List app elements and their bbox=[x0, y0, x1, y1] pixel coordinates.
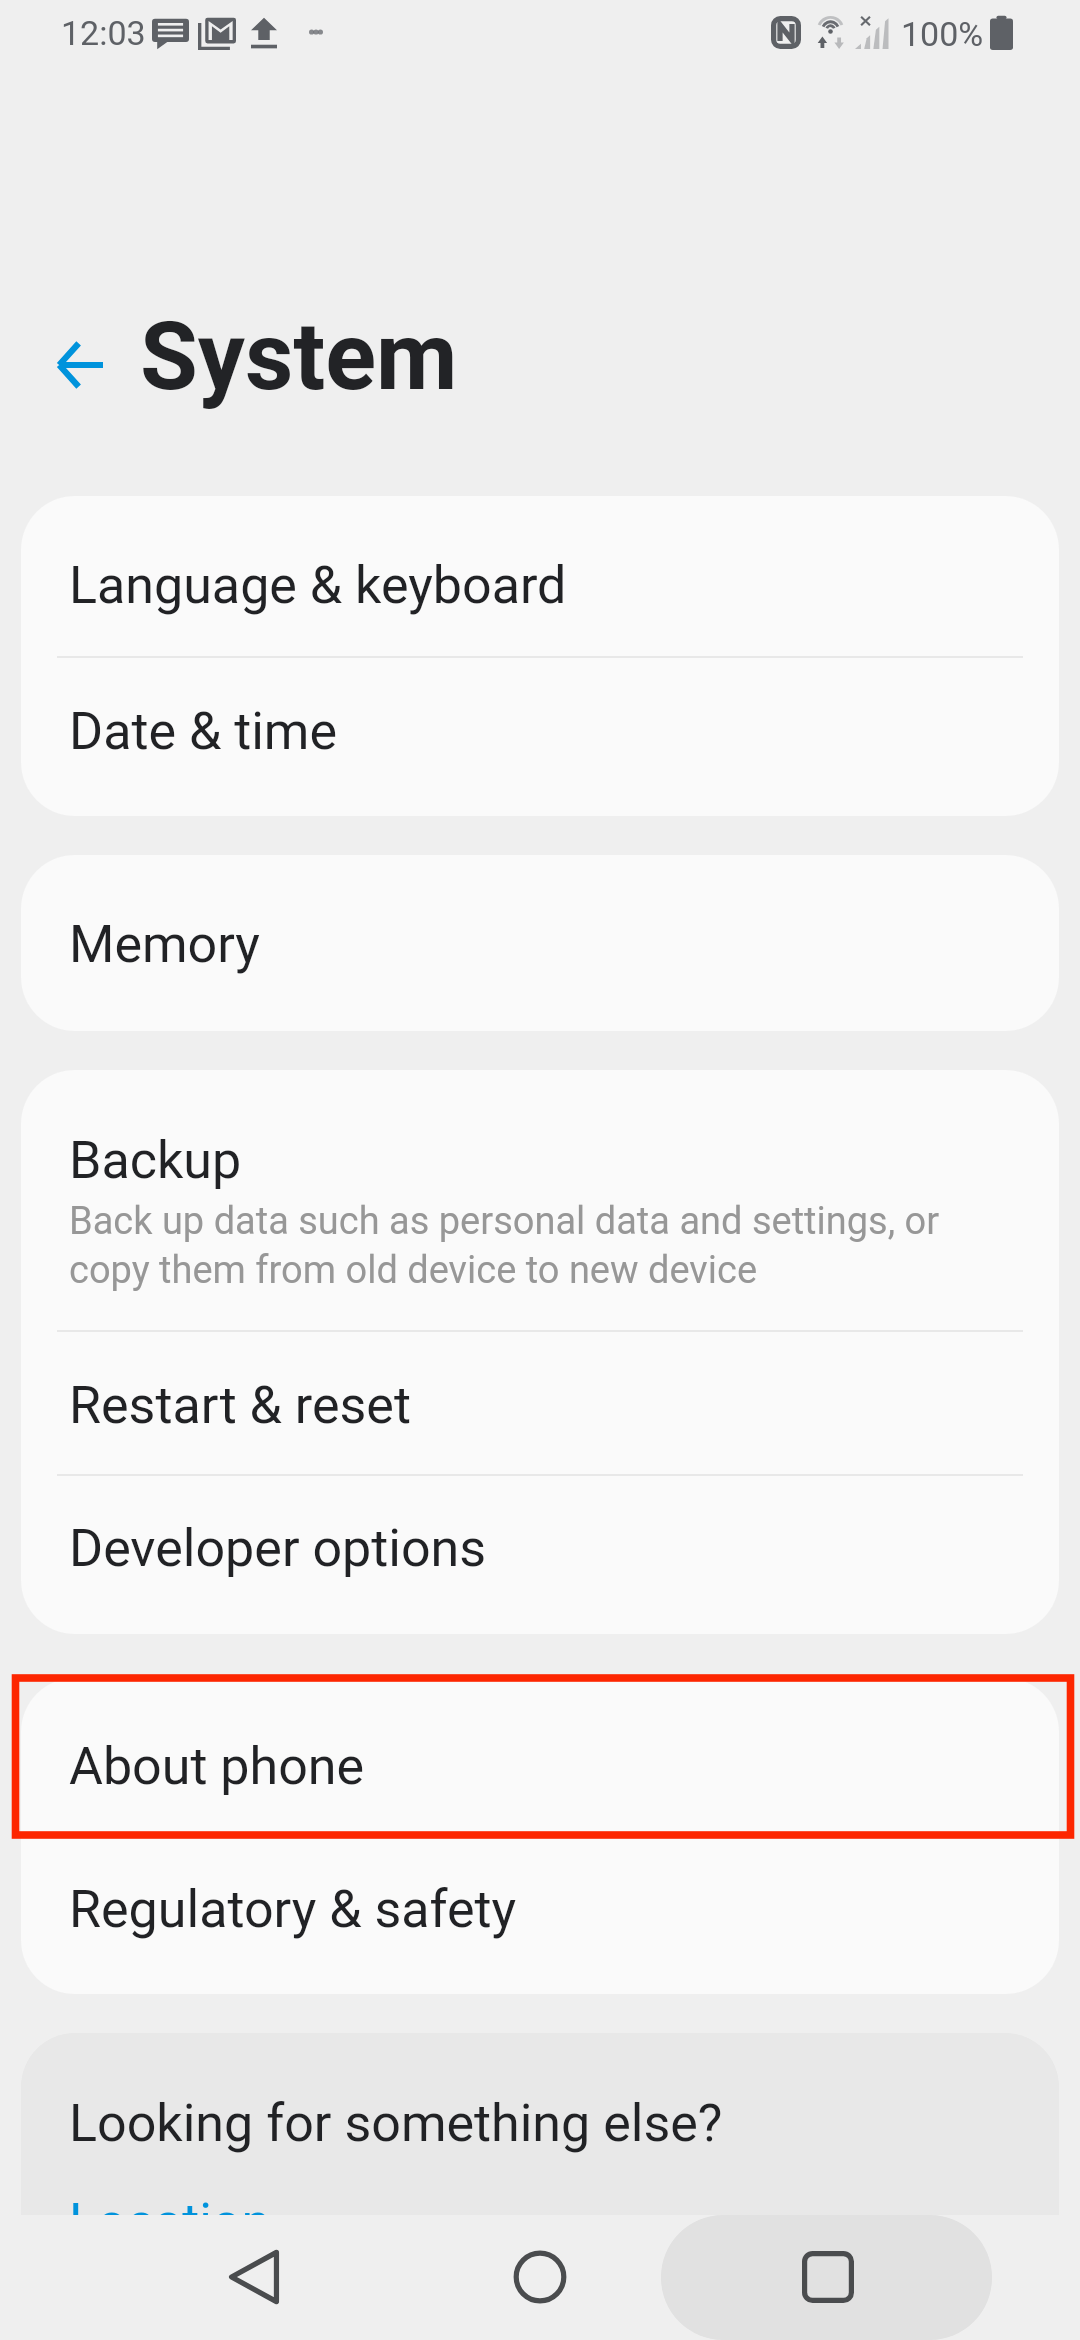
staticText: Language & keyboard bbox=[69, 555, 567, 616]
button[interactable]: Restart & reset bbox=[21, 1332, 1059, 1474]
button[interactable]: About phone bbox=[21, 1678, 1059, 1836]
staticText: Regulatory & safety bbox=[69, 1879, 517, 1940]
button[interactable]: Back bbox=[113, 2215, 393, 2340]
staticText: About phone bbox=[69, 1736, 365, 1797]
staticText: Memory bbox=[69, 914, 260, 975]
staticText: Back up data such as personal data and s… bbox=[69, 1199, 940, 1292]
staticText: 12:03 bbox=[61, 13, 146, 53]
button[interactable]: Memory bbox=[21, 855, 1059, 1031]
button[interactable]: Back bbox=[20, 305, 140, 425]
staticText: Looking for something else? bbox=[69, 2093, 723, 2154]
staticText: Restart & reset bbox=[69, 1375, 411, 1436]
staticText: Developer options bbox=[69, 1518, 487, 1579]
button[interactable]: Language & keyboard bbox=[21, 496, 1059, 656]
staticText: Backup bbox=[69, 1130, 242, 1191]
button[interactable]: Recent apps bbox=[687, 2215, 967, 2340]
button[interactable]: Backup bbox=[21, 1070, 1059, 1330]
staticText: 100% bbox=[901, 14, 984, 54]
button[interactable]: Regulatory & safety bbox=[21, 1838, 1059, 1994]
button[interactable]: Developer options bbox=[21, 1476, 1059, 1634]
button[interactable]: Home bbox=[400, 2215, 680, 2340]
button[interactable]: Date & time bbox=[21, 658, 1059, 816]
staticText: System bbox=[140, 302, 458, 412]
staticText: Location bbox=[69, 2192, 271, 2253]
staticText: Date & time bbox=[69, 701, 337, 762]
